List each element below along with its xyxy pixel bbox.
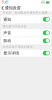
staticText: 振动 [3, 38, 11, 43]
staticText: 4G [41, 1, 45, 4]
staticText: 显示详情 [3, 51, 19, 55]
staticText: 开启后，新消息会在通知中心提醒 [3, 11, 48, 14]
staticText: 通知 [3, 17, 11, 22]
button[interactable]: 通知 [1, 15, 51, 23]
staticText: 关闭后将不再收到通知 [3, 45, 33, 48]
button[interactable]: 振动 [1, 37, 51, 44]
button[interactable]: 显示详情 [1, 50, 51, 57]
staticText: 9:41 [2, 1, 9, 4]
button[interactable]: 声音 [1, 29, 51, 37]
staticText: 声音 [3, 30, 11, 35]
staticText: 通知显示消息详情 [3, 25, 27, 28]
button[interactable]: Back [0, 5, 5, 11]
staticText: 通知设置 [5, 5, 21, 10]
